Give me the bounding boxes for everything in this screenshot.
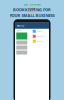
staticText: Sign up bbox=[16, 30, 21, 32]
staticText: Menu bbox=[16, 24, 24, 27]
staticText: Expenses bbox=[37, 35, 45, 37]
staticText: GET 30% OFF bbox=[23, 3, 40, 6]
staticText: Invoices bbox=[37, 30, 43, 32]
staticText: Reports bbox=[37, 40, 43, 42]
staticText: BOOKKEEPING FOR bbox=[13, 7, 51, 12]
staticText: YOUR SMALL BUSINESS bbox=[9, 13, 54, 18]
